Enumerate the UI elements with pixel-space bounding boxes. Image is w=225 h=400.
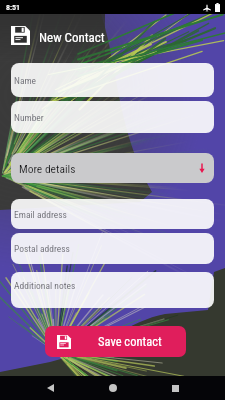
button[interactable]: Save contact [45,326,186,357]
staticText: Name [14,75,37,86]
staticText: Number [14,112,44,123]
staticText: 8:51 [6,3,21,12]
button[interactable]: Recent apps [163,376,187,400]
staticText: More details [19,162,76,175]
staticText: Postal address [14,243,70,254]
button[interactable]: Postal address [11,233,214,264]
staticText: Additional notes [14,280,76,291]
button[interactable]: Additional notes [11,272,214,308]
button[interactable]: Email address [11,199,214,229]
button[interactable]: Home [101,376,125,400]
staticText: Save contact [98,334,162,349]
button[interactable]: Save [7,22,33,48]
button[interactable]: Name [11,63,214,97]
staticText: Email address [14,209,67,220]
button[interactable]: Number [11,101,214,133]
button[interactable]: Back [38,376,62,400]
staticText: New Contact [39,30,105,45]
button[interactable]: More details [11,153,214,183]
